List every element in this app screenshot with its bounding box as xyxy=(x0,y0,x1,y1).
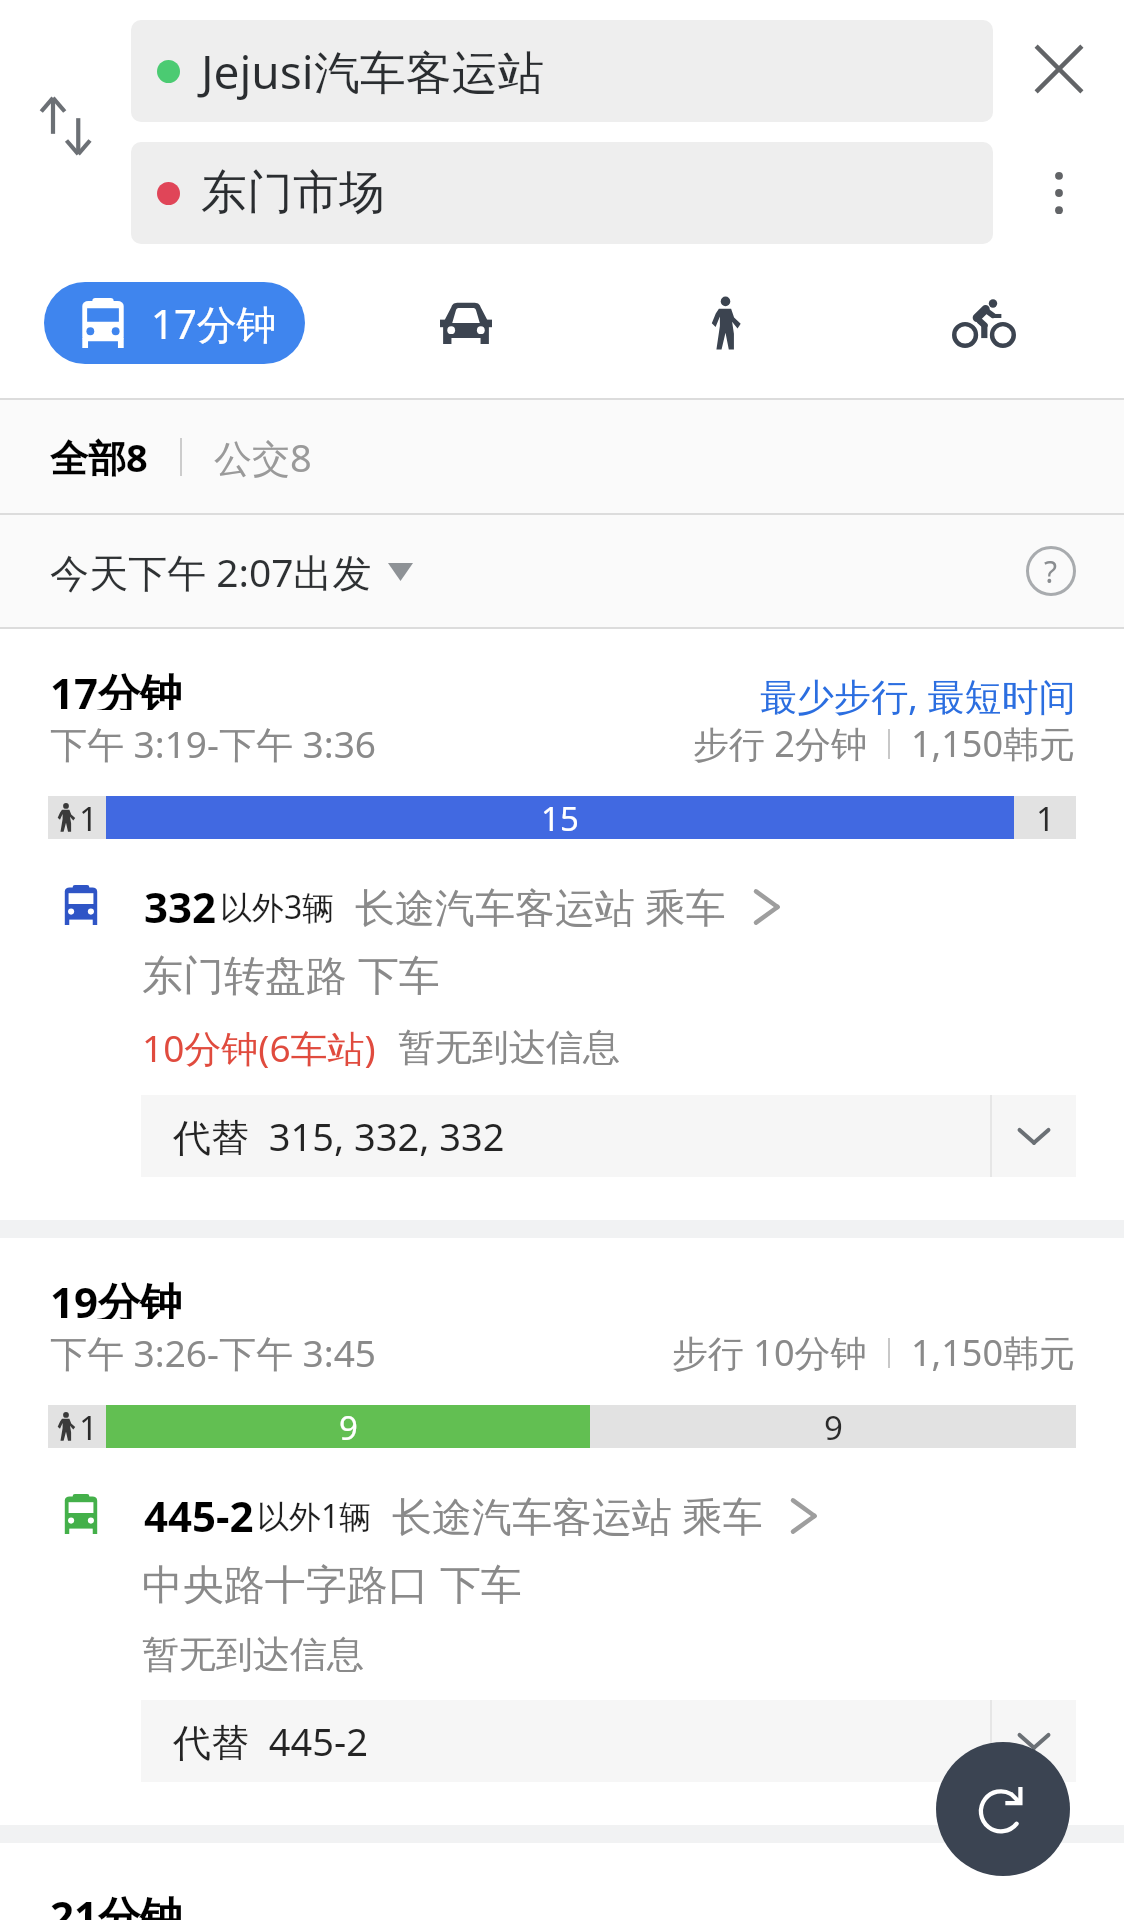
button[interactable]: 17分钟 xyxy=(0,629,1124,1220)
staticText: 10分钟(6车站) xyxy=(142,1022,376,1073)
staticText: 以外3辆 xyxy=(220,885,335,929)
button[interactable]: 全部8 xyxy=(50,431,148,483)
staticText: 东门市场 xyxy=(201,164,385,222)
staticText: 9 xyxy=(339,1405,358,1448)
staticText: 全部8 xyxy=(50,431,148,483)
button[interactable]: 19分钟 xyxy=(0,1238,1124,1825)
button[interactable]: Cycling xyxy=(934,282,1034,364)
button[interactable]: Jejusi汽车客运站 xyxy=(131,20,993,122)
staticText: 长途汽车客运站 乘车 xyxy=(355,879,726,934)
staticText: 下午 3:26-下午 3:45 xyxy=(50,1327,376,1378)
staticText: 今天下午 2:07出发 xyxy=(50,545,372,598)
staticText: 步行 10分钟 xyxy=(672,1328,867,1377)
staticText: 步行 2分钟 xyxy=(693,719,867,768)
button[interactable]: 17分钟 xyxy=(44,282,305,364)
staticText: 暂无到达信息 xyxy=(398,1024,620,1071)
button[interactable]: Driving xyxy=(416,282,516,364)
staticText: 公交8 xyxy=(214,431,312,483)
button[interactable]: Walking xyxy=(675,282,775,364)
button[interactable]: 今天下午 2:07出发 xyxy=(50,545,413,598)
button[interactable]: More options xyxy=(1009,143,1109,243)
staticText: 代替 445-2 xyxy=(173,1715,368,1767)
staticText: ? xyxy=(1044,551,1058,592)
staticText: 1,150韩元 xyxy=(911,719,1076,768)
staticText: 1,150韩元 xyxy=(911,1328,1076,1377)
button[interactable]: Swap origin and destination xyxy=(16,72,116,180)
staticText: 以外1辆 xyxy=(257,1494,372,1538)
button[interactable]: 代替 315, 332, 332 xyxy=(141,1095,1076,1177)
staticText: 代替 315, 332, 332 xyxy=(173,1110,505,1162)
staticText: 17分钟 xyxy=(50,664,183,710)
staticText: 19分钟 xyxy=(50,1273,183,1319)
staticText: 下午 3:19-下午 3:36 xyxy=(50,718,376,769)
staticText: 中央路十字路口 下车 xyxy=(142,1555,522,1611)
staticText: 17分钟 xyxy=(151,296,277,351)
button[interactable]: 公交8 xyxy=(214,431,312,483)
staticText: 东门转盘路 下车 xyxy=(142,946,440,1002)
staticText: Jejusi汽车客运站 xyxy=(201,40,544,103)
staticText: 暂无到达信息 xyxy=(142,1631,364,1678)
button[interactable]: Close xyxy=(1009,19,1109,119)
staticText: 445-2 xyxy=(144,1487,254,1544)
staticText: 1 xyxy=(79,1405,98,1448)
button[interactable]: Refresh xyxy=(936,1742,1070,1876)
staticText: 长途汽车客运站 乘车 xyxy=(392,1488,763,1543)
button[interactable]: Help xyxy=(1003,523,1099,619)
staticText: 最少步行, 最短时间 xyxy=(760,670,1076,716)
staticText: 9 xyxy=(824,1405,843,1448)
staticText: 332 xyxy=(144,878,217,935)
staticText: 1 xyxy=(79,796,98,839)
button[interactable]: 代替 445-2 xyxy=(141,1700,1076,1782)
staticText: 21分钟 xyxy=(50,1887,183,1920)
staticText: 15 xyxy=(541,796,579,839)
staticText: 1 xyxy=(1036,796,1055,839)
button[interactable]: 东门市场 xyxy=(131,142,993,244)
